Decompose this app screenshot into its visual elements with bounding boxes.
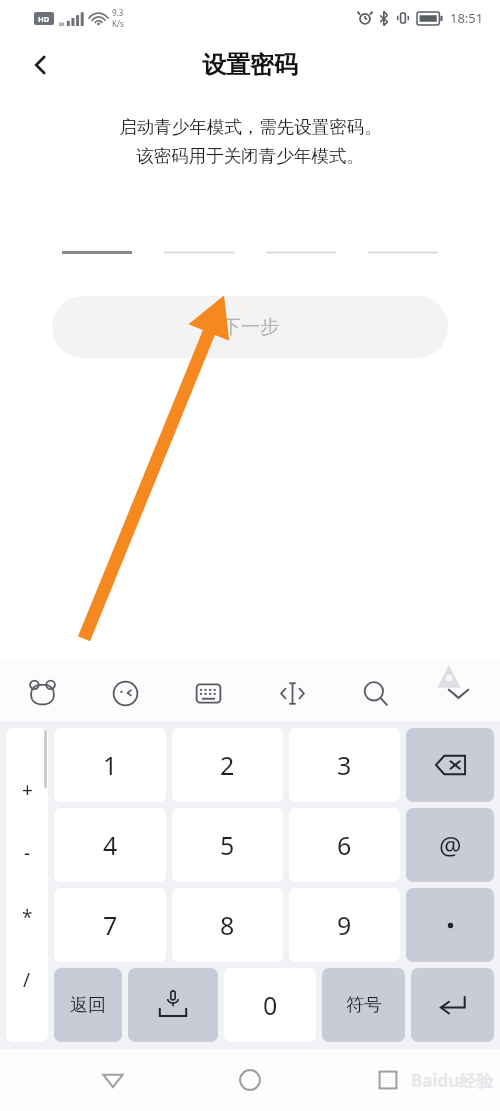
button[interactable]: 4	[54, 808, 166, 882]
button[interactable]: Emoji	[103, 671, 147, 715]
staticText: 设置密码	[202, 50, 298, 80]
staticText: /	[23, 967, 31, 993]
staticText: 符号	[346, 994, 382, 1017]
staticText: K/s	[112, 18, 124, 29]
button[interactable]: Keyboard layout	[186, 671, 230, 715]
button[interactable]: 1	[54, 728, 166, 802]
staticText: 2	[220, 748, 235, 782]
staticText: 0	[263, 988, 278, 1022]
staticText: *	[22, 904, 33, 930]
staticText: 5	[220, 828, 235, 862]
button[interactable]	[62, 245, 132, 259]
button[interactable]: Period	[406, 888, 494, 962]
staticText: 18:51	[450, 9, 484, 27]
button[interactable]: 下一步	[52, 296, 448, 358]
staticText: 8	[220, 908, 235, 942]
staticText: 6	[337, 828, 352, 862]
button[interactable]: Hide keyboard	[436, 671, 480, 715]
staticText: Baidu经验	[411, 1069, 494, 1092]
button[interactable]: 符号	[322, 968, 405, 1042]
button[interactable]: Space	[128, 968, 218, 1042]
staticText: HD	[38, 14, 50, 24]
staticText: 该密码用于关闭青少年模式。	[136, 145, 364, 167]
button[interactable]: Search	[353, 671, 397, 715]
button[interactable]: Enter	[411, 968, 494, 1042]
button[interactable]: 0	[224, 968, 316, 1042]
button[interactable]	[368, 245, 438, 259]
staticText: +	[22, 777, 33, 803]
staticText: 3	[337, 748, 352, 782]
button[interactable]: Backspace	[406, 728, 494, 802]
button[interactable]: Home	[225, 1055, 275, 1105]
staticText: 1	[103, 748, 118, 782]
button[interactable]: Baidu input	[20, 671, 64, 715]
button[interactable]: 2	[172, 728, 283, 802]
staticText: 9.3	[112, 7, 124, 18]
button[interactable]: Symbols	[6, 728, 48, 1042]
button[interactable]: @	[406, 808, 494, 882]
staticText: 下一步	[222, 315, 279, 339]
button[interactable]: 5	[172, 808, 283, 882]
button[interactable]: 返回	[54, 968, 122, 1042]
button[interactable]: Back	[88, 1055, 138, 1105]
button[interactable]: Recents	[363, 1055, 413, 1105]
staticText: -	[24, 840, 31, 866]
button[interactable]: Move cursor	[270, 671, 314, 715]
button[interactable]: 3	[289, 728, 400, 802]
staticText: 9	[337, 908, 352, 942]
button[interactable]: Back	[18, 42, 64, 88]
button[interactable]: 8	[172, 888, 283, 962]
button[interactable]: 9	[289, 888, 400, 962]
staticText: 4	[103, 828, 118, 862]
staticText: @	[439, 828, 462, 862]
button[interactable]	[164, 245, 234, 259]
button[interactable]	[266, 245, 336, 259]
button[interactable]: 7	[54, 888, 166, 962]
staticText: 启动青少年模式，需先设置密码。	[119, 116, 382, 138]
staticText: 返回	[70, 994, 106, 1017]
staticText: 7	[103, 908, 118, 942]
button[interactable]: 6	[289, 808, 400, 882]
